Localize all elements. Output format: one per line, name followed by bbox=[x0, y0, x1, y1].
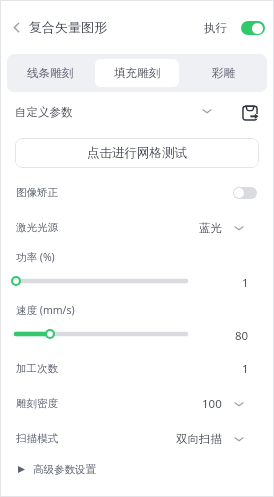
staticText: 线条雕刻 bbox=[27, 66, 74, 81]
staticText: 自定义参数 bbox=[15, 105, 73, 119]
staticText: 点击进行网格测试 bbox=[87, 145, 187, 161]
staticText: 速度 (mm/s) bbox=[16, 303, 75, 317]
staticText: 1 bbox=[242, 275, 249, 291]
staticText: 加工次数 bbox=[16, 362, 58, 375]
staticText: 填充雕刻 bbox=[114, 66, 161, 81]
staticText: 图像矫正 bbox=[16, 186, 58, 199]
button[interactable]: 彩雕 bbox=[189, 59, 259, 87]
staticText: 功率 (%) bbox=[16, 250, 55, 264]
staticText: 100 bbox=[202, 396, 222, 412]
button[interactable]: 扫描模式 bbox=[0, 421, 274, 456]
button[interactable]: Execute toggle bbox=[241, 21, 265, 35]
staticText: 蓝光 bbox=[199, 221, 222, 235]
button[interactable]: 雕刻密度 bbox=[0, 386, 274, 421]
button[interactable]: 点击进行网格测试 bbox=[15, 138, 259, 168]
staticText: 彩雕 bbox=[212, 66, 236, 81]
staticText: 80 bbox=[235, 328, 249, 344]
button[interactable]: 高级参数设置 bbox=[0, 456, 274, 482]
staticText: 1 bbox=[242, 361, 249, 377]
staticText: 双向扫描 bbox=[176, 432, 222, 446]
button[interactable]: 加工次数 bbox=[0, 351, 274, 386]
staticText: 复合矢量图形 bbox=[29, 19, 107, 35]
staticText: 执行 bbox=[204, 21, 227, 35]
button[interactable]: 激光光源 bbox=[0, 210, 274, 245]
button[interactable]: 填充雕刻 bbox=[95, 59, 179, 87]
staticText: 高级参数设置 bbox=[33, 463, 96, 476]
staticText: 扫描模式 bbox=[16, 432, 58, 445]
button[interactable]: 图像矫正 bbox=[0, 175, 274, 210]
staticText: 雕刻密度 bbox=[16, 397, 58, 410]
button[interactable]: Export parameters bbox=[241, 104, 258, 121]
button[interactable]: Back bbox=[8, 19, 24, 35]
staticText: 激光光源 bbox=[16, 221, 58, 234]
button[interactable]: 线条雕刻 bbox=[15, 59, 85, 87]
